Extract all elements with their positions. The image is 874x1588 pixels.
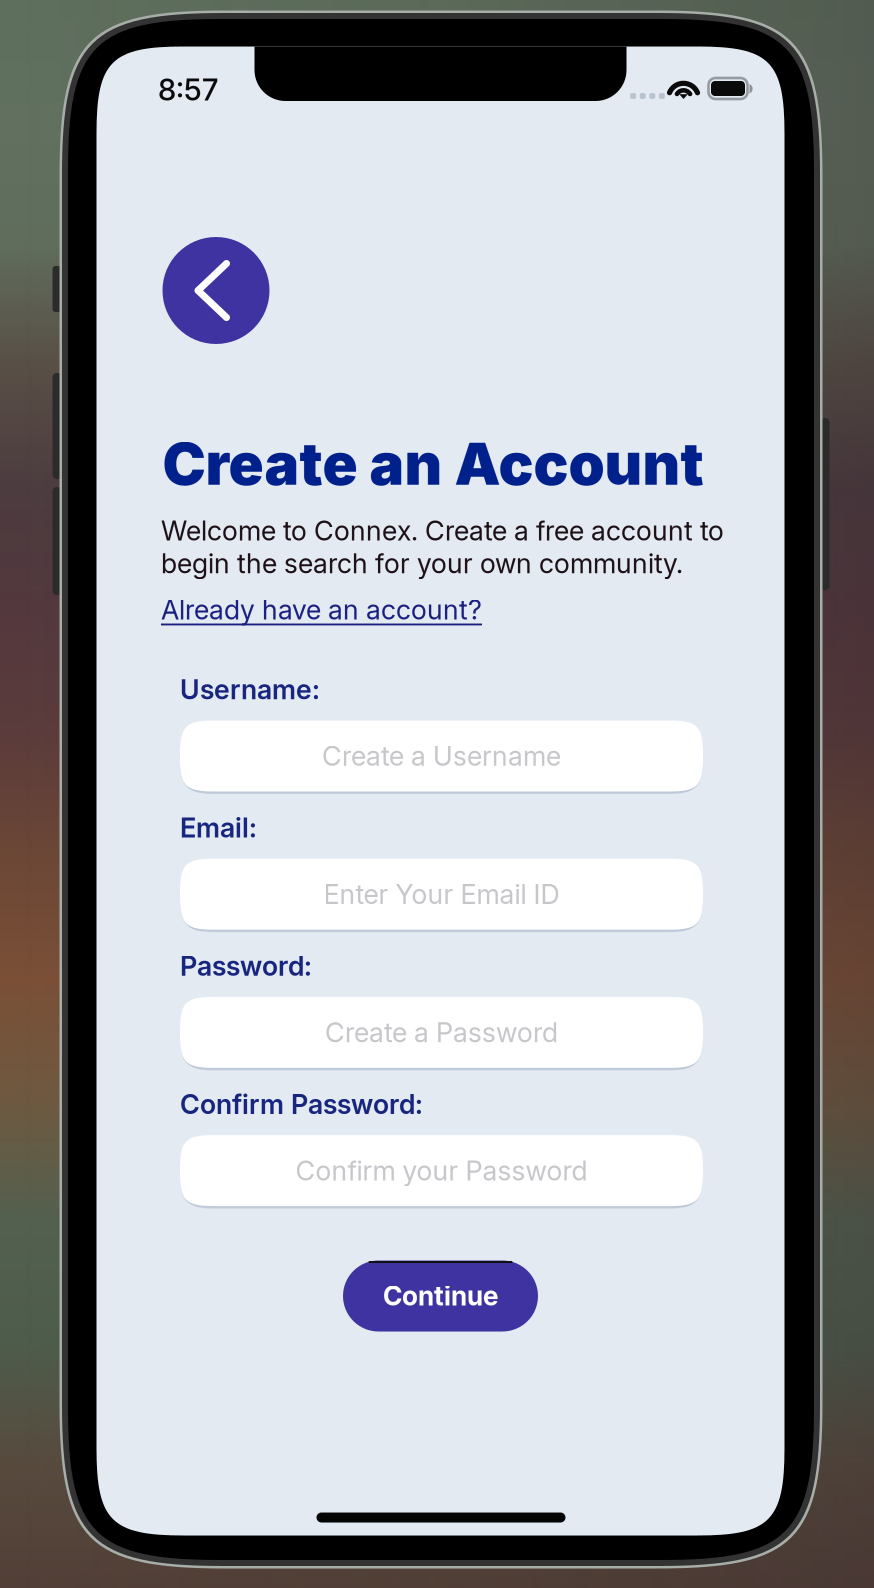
button[interactable]: Create a Username <box>180 719 703 793</box>
button[interactable]: Enter Your Email ID <box>180 857 703 931</box>
button[interactable]: Confirm your Password <box>180 1134 703 1208</box>
button[interactable]: Create a Password <box>180 995 703 1069</box>
staticText: Enter Your Email ID <box>323 878 559 910</box>
staticText: Create an Account <box>162 428 703 499</box>
staticText: Welcome to Connex. Create a free account… <box>161 514 724 580</box>
staticText: Already have an account? <box>161 593 482 626</box>
staticText: Email: <box>180 811 257 844</box>
staticText: 8:57 <box>158 72 218 108</box>
button[interactable]: Continue <box>343 1260 538 1331</box>
staticText: Confirm your Password <box>295 1154 587 1187</box>
staticText: Confirm Password: <box>180 1088 423 1120</box>
staticText: Create a Password <box>325 1016 558 1049</box>
button[interactable]: Already have an account? <box>161 593 482 626</box>
staticText: Create a Username <box>322 740 561 772</box>
button[interactable]: Back <box>162 237 269 344</box>
staticText: Continue <box>383 1280 498 1312</box>
staticText: Password: <box>180 950 312 982</box>
staticText: Username: <box>180 673 320 706</box>
